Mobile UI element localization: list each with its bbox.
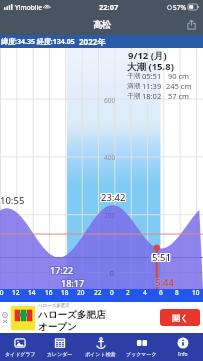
staticText: 10:55: [0, 195, 25, 208]
staticText: 17:22: [51, 265, 75, 277]
staticText: 8: [175, 288, 179, 297]
staticText: 18:17: [62, 278, 86, 290]
staticText: 17:22: [49, 265, 73, 277]
staticText: 開く: [172, 313, 189, 323]
staticText: 57 cm: [166, 91, 190, 101]
staticText: 5:44: [154, 277, 173, 290]
staticText: 400: [104, 153, 116, 162]
staticText: 干潮: [127, 72, 140, 80]
staticText: 11:39: [142, 81, 162, 91]
button[interactable]: タイドグラフ: [0, 333, 40, 361]
staticText: 5:44: [155, 276, 174, 289]
staticText: 10:55: [0, 193, 25, 206]
staticText: 05:51: [142, 71, 162, 81]
staticText: 23:42: [101, 190, 126, 203]
button[interactable]: Share: [185, 18, 198, 31]
staticText: 10:55: [0, 194, 25, 207]
staticText: 大潮 (15.8): [127, 60, 174, 73]
staticText: 57%: [173, 3, 186, 12]
staticText: 22: [94, 288, 102, 297]
staticText: 18:02: [142, 91, 162, 101]
staticText: 10:55: [1, 193, 26, 206]
staticText: 5:44: [156, 275, 175, 288]
staticText: 18:17: [60, 277, 84, 289]
staticText: 10:55: [1, 195, 26, 208]
staticText: 245 cm: [166, 81, 192, 91]
staticText: Info: [178, 351, 188, 358]
staticText: 18: [61, 288, 69, 297]
staticText: 17:22: [51, 264, 75, 276]
staticText: 23:42: [100, 191, 125, 204]
button[interactable]: カレンダー: [40, 333, 80, 361]
staticText: 10: [0, 288, 4, 297]
staticText: 5:51: [152, 250, 171, 263]
staticText: 600: [104, 96, 116, 105]
staticText: 10:55: [0, 195, 24, 208]
staticText: オープン: [38, 321, 77, 333]
staticText: 5:44: [156, 277, 175, 290]
staticText: Y!mobile: [15, 3, 42, 12]
staticText: 18:17: [62, 277, 86, 289]
button[interactable]: Info: [162, 333, 203, 361]
staticText: 23:42: [102, 192, 127, 205]
staticText: 5:44: [155, 275, 174, 288]
staticText: 0: [110, 269, 114, 278]
staticText: 23:42: [101, 191, 126, 204]
staticText: 90 cm: [166, 71, 190, 81]
staticText: 23:42: [100, 192, 125, 205]
staticText: 12: [12, 288, 20, 297]
staticText: 18:17: [61, 277, 85, 289]
staticText: 10: [192, 288, 200, 297]
button[interactable]: ポイント検索: [80, 333, 121, 361]
staticText: 17:22: [50, 264, 74, 276]
staticText: 5:51: [153, 250, 172, 263]
staticText: 5:51: [152, 252, 171, 265]
staticText: 干潮: [127, 92, 140, 100]
staticText: 5:44: [155, 277, 174, 290]
staticText: ハローズ多肥店: [38, 303, 70, 309]
staticText: 18:17: [60, 276, 84, 288]
staticText: ポイント検索: [85, 351, 116, 357]
staticText: 17:22: [51, 263, 75, 275]
staticText: 17:22: [49, 263, 73, 275]
staticText: 200: [104, 211, 116, 220]
staticText: タイドグラフ: [5, 351, 36, 357]
staticText: 2: [126, 288, 130, 297]
staticText: 高松: [93, 19, 111, 30]
staticText: 14: [28, 288, 36, 297]
staticText: 17:22: [50, 263, 74, 275]
staticText: 22:07: [99, 2, 119, 12]
staticText: 10:55: [0, 193, 24, 206]
staticText: 23:42: [102, 190, 127, 203]
staticText: 23:42: [100, 190, 125, 203]
staticText: 5:51: [153, 252, 172, 265]
staticText: 5:51: [151, 250, 170, 263]
staticText: 23:42: [102, 191, 127, 204]
staticText: 4: [143, 288, 147, 297]
staticText: 18:17: [61, 276, 85, 288]
staticText: 18:17: [60, 278, 84, 290]
staticText: 18:17: [62, 276, 86, 288]
staticText: 0: [110, 288, 114, 297]
button[interactable]: ブックマーク: [121, 333, 162, 361]
staticText: 18:17: [61, 278, 85, 290]
staticText: 5:51: [153, 251, 172, 264]
staticText: 16: [45, 288, 53, 297]
staticText: 23:42: [101, 192, 126, 205]
staticText: 緯度:34.35 経度:134.05: [1, 37, 79, 47]
staticText: 20: [77, 288, 85, 297]
staticText: 5:51: [152, 251, 171, 264]
staticText: 満潮: [127, 82, 140, 90]
button[interactable]: 開く: [160, 309, 200, 326]
staticText: ブックマーク: [126, 351, 157, 357]
staticText: 6: [159, 288, 163, 297]
button[interactable]: ハローズ多肥店: [0, 302, 203, 333]
staticText: ハローズ多肥店: [38, 309, 106, 321]
staticText: 5:51: [151, 251, 170, 264]
staticText: 5:44: [154, 276, 173, 289]
staticText: 17:22: [49, 264, 73, 276]
staticText: 5:51: [151, 252, 170, 265]
staticText: 5:44: [156, 276, 175, 289]
staticText: 2022年: [79, 36, 106, 47]
staticText: 17:22: [50, 265, 74, 277]
